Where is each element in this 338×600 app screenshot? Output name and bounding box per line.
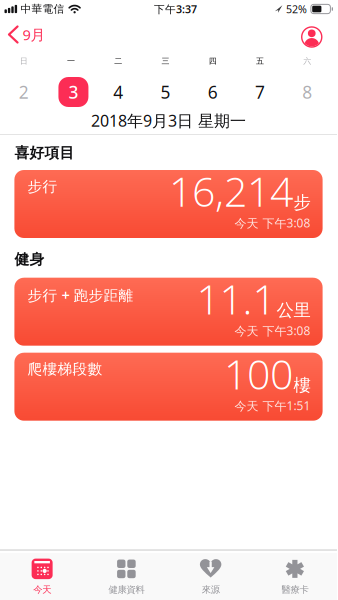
- staticText: 六: [303, 56, 311, 66]
- staticText: 喜好項目: [14, 144, 74, 162]
- staticText: 日: [20, 56, 28, 66]
- staticText: 8: [302, 80, 312, 103]
- staticText: 今天: [33, 584, 51, 595]
- button[interactable]: 爬樓梯段數: [14, 353, 323, 421]
- staticText: 9月: [22, 25, 45, 44]
- staticText: 步行: [27, 177, 57, 195]
- button[interactable]: 步行: [14, 170, 323, 238]
- staticText: 3: [68, 80, 78, 103]
- staticText: 來源: [202, 584, 220, 595]
- staticText: 健康資料: [108, 584, 144, 595]
- button[interactable]: 步行 + 跑步距離: [14, 278, 323, 346]
- staticText: 6: [208, 80, 218, 103]
- button[interactable]: 來源: [168, 558, 253, 595]
- staticText: 下午3:37: [154, 2, 197, 16]
- staticText: 二: [114, 56, 122, 66]
- staticText: 步: [294, 192, 311, 213]
- button[interactable]: 9月: [0, 26, 45, 46]
- staticText: 7: [255, 80, 265, 103]
- button[interactable]: 8: [284, 75, 331, 98]
- staticText: 樓: [294, 374, 311, 396]
- staticText: 爬樓梯段數: [27, 360, 102, 378]
- button[interactable]: 7: [236, 75, 284, 98]
- staticText: 100: [224, 345, 293, 401]
- staticText: 醫療卡: [281, 584, 308, 595]
- button[interactable]: 醫療卡: [253, 558, 337, 595]
- staticText: 今天 下午3:08: [235, 323, 311, 339]
- button[interactable]: 6: [189, 75, 236, 98]
- button[interactable]: 2: [0, 75, 47, 98]
- staticText: 16,214: [169, 163, 293, 219]
- staticText: 公里: [277, 299, 311, 321]
- staticText: 2018年9月3日 星期一: [91, 110, 246, 131]
- staticText: 今天 下午3:08: [235, 215, 311, 231]
- staticText: 健身: [14, 250, 44, 268]
- button[interactable]: 4: [95, 75, 142, 98]
- staticText: 今天 下午1:51: [235, 398, 311, 414]
- button[interactable]: [301, 25, 322, 47]
- button[interactable]: 健康資料: [84, 558, 168, 595]
- staticText: 5: [160, 80, 170, 103]
- staticText: 三: [161, 56, 169, 66]
- staticText: 五: [256, 56, 264, 66]
- staticText: 一: [67, 56, 75, 66]
- button[interactable]: 今天: [0, 558, 84, 595]
- staticText: 2: [19, 80, 29, 103]
- staticText: 四: [209, 56, 217, 66]
- staticText: 52%: [286, 2, 307, 16]
- staticText: 步行 + 跑步距離: [27, 285, 133, 305]
- staticText: 4: [113, 80, 123, 103]
- staticText: 11.1: [197, 270, 276, 326]
- button[interactable]: 5: [142, 75, 189, 98]
- button[interactable]: 3: [47, 72, 95, 102]
- staticText: 中華電信: [21, 2, 65, 15]
